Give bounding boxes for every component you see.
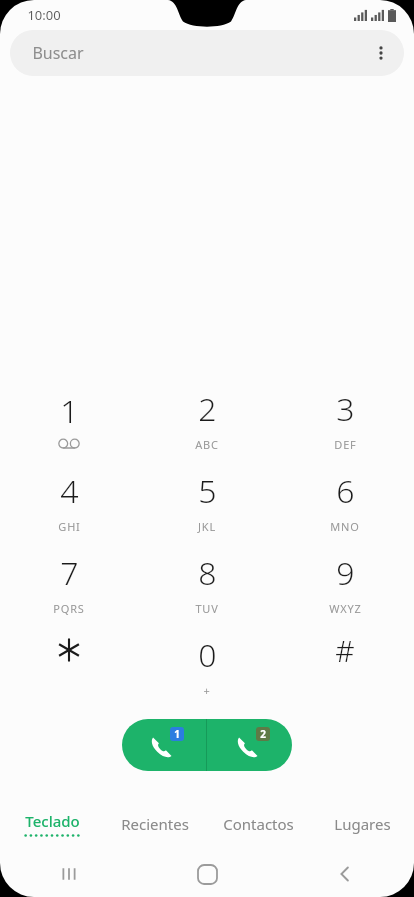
staticText: ABC bbox=[195, 437, 219, 452]
button[interactable]: Recientes bbox=[103, 807, 206, 841]
staticText: PQRS bbox=[53, 601, 85, 616]
button[interactable]: 4 bbox=[0, 455, 138, 537]
button[interactable]: Lugares bbox=[310, 807, 414, 841]
button[interactable]: # bbox=[276, 619, 414, 701]
staticText: Buscar bbox=[32, 42, 84, 64]
button[interactable]: 9 bbox=[276, 537, 414, 619]
staticText: # bbox=[335, 630, 355, 671]
button[interactable]: 6 bbox=[276, 455, 414, 537]
button[interactable]: 8 bbox=[138, 537, 276, 619]
staticText: Contactos bbox=[223, 814, 294, 834]
staticText: 0 bbox=[198, 633, 217, 677]
button[interactable]: 5 bbox=[138, 455, 276, 537]
staticText: 2 bbox=[260, 727, 266, 741]
staticText: Recientes bbox=[121, 814, 189, 834]
staticText: 1 bbox=[60, 389, 79, 433]
staticText: 4 bbox=[60, 469, 79, 513]
staticText: 9 bbox=[336, 551, 355, 595]
button[interactable]: 2 bbox=[138, 373, 276, 455]
staticText: 10:00 bbox=[27, 6, 61, 24]
button[interactable]: Call with SIM 2 bbox=[207, 719, 292, 771]
button[interactable]: Back bbox=[276, 851, 414, 897]
button[interactable]: Home bbox=[138, 851, 276, 897]
button[interactable]: Teclado bbox=[0, 807, 103, 841]
button[interactable]: Call with SIM 1 bbox=[122, 719, 206, 771]
staticText: GHI bbox=[58, 519, 81, 534]
staticText: JKL bbox=[198, 519, 216, 534]
button[interactable]: 7 bbox=[0, 537, 138, 619]
button[interactable]: Recent apps bbox=[0, 851, 138, 897]
staticText: TUV bbox=[195, 601, 219, 616]
staticText: 2 bbox=[198, 387, 217, 431]
staticText: WXYZ bbox=[329, 601, 362, 616]
button[interactable]: More options bbox=[358, 30, 404, 76]
button[interactable]: 1 bbox=[0, 373, 138, 455]
staticText: 8 bbox=[198, 551, 217, 595]
staticText: 6 bbox=[336, 469, 355, 513]
staticText: MNO bbox=[330, 519, 360, 534]
button[interactable]: Contactos bbox=[206, 807, 310, 841]
staticText: 3 bbox=[336, 387, 355, 431]
button[interactable] bbox=[0, 619, 138, 701]
staticText: DEF bbox=[334, 437, 357, 452]
staticText: + bbox=[203, 683, 211, 698]
staticText: Teclado bbox=[25, 811, 80, 831]
staticText: 5 bbox=[198, 469, 217, 513]
staticText: Lugares bbox=[334, 814, 391, 834]
button[interactable]: 3 bbox=[276, 373, 414, 455]
button[interactable]: 0 bbox=[138, 619, 276, 701]
staticText: 7 bbox=[60, 551, 79, 595]
staticText: 1 bbox=[174, 727, 180, 741]
button[interactable]: Buscar bbox=[10, 30, 404, 76]
